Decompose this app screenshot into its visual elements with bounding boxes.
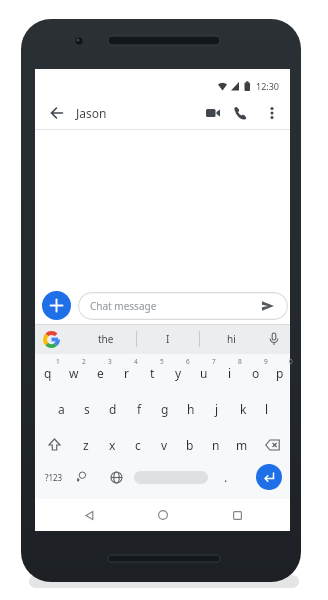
button[interactable]: e (87, 354, 113, 391)
button[interactable]: j (204, 391, 230, 427)
button[interactable] (265, 106, 279, 120)
staticText: o (252, 365, 260, 381)
staticText: . (224, 469, 228, 485)
staticText: i (228, 365, 232, 381)
button[interactable]: b (177, 427, 203, 462)
staticText: 7 (212, 357, 216, 366)
staticText: 1 (56, 357, 60, 366)
button[interactable]: g (152, 391, 178, 427)
button[interactable]: c (125, 427, 151, 462)
staticText: ?123 (45, 472, 63, 483)
button[interactable] (231, 104, 249, 122)
staticText: Chat message (90, 299, 157, 313)
staticText: y (175, 365, 182, 381)
staticText: Jason (76, 105, 107, 121)
staticText: g (161, 401, 169, 417)
staticText: n (212, 437, 220, 453)
button[interactable]: m (229, 427, 255, 462)
button[interactable] (134, 471, 208, 484)
button[interactable] (267, 332, 281, 346)
button[interactable]: h (178, 391, 204, 427)
button[interactable] (129, 462, 213, 492)
button[interactable]: Chat message (78, 292, 288, 320)
staticText: 0 (289, 357, 290, 366)
button[interactable]: o (243, 354, 269, 391)
staticText: I (166, 332, 170, 346)
staticText: r (124, 365, 129, 381)
button[interactable]: hi (200, 324, 262, 354)
staticText: p (276, 365, 284, 381)
button[interactable] (42, 291, 71, 320)
button[interactable] (255, 427, 290, 462)
button[interactable] (71, 502, 107, 528)
staticText: z (83, 437, 89, 453)
button[interactable] (260, 298, 276, 314)
staticText: 6 (186, 357, 190, 366)
button[interactable]: I (137, 324, 199, 354)
button[interactable] (35, 427, 73, 462)
button[interactable] (68, 462, 94, 492)
button[interactable] (256, 464, 282, 490)
staticText: 3 (108, 357, 112, 366)
staticText: m (236, 437, 248, 453)
button[interactable]: l (256, 391, 277, 427)
button[interactable] (103, 462, 129, 492)
button[interactable] (49, 105, 65, 121)
button[interactable] (204, 104, 222, 122)
staticText: c (135, 437, 141, 453)
staticText: f (137, 401, 142, 417)
staticText: x (109, 437, 116, 453)
staticText: d (109, 401, 117, 417)
staticText: e (97, 365, 104, 381)
button[interactable]: t (139, 354, 165, 391)
button[interactable]: the (75, 324, 136, 354)
button[interactable]: ?123 (35, 462, 73, 492)
button[interactable]: r (113, 354, 139, 391)
button[interactable]: u (191, 354, 217, 391)
button[interactable]: . (213, 462, 239, 492)
staticText: h (187, 401, 195, 417)
staticText: the (98, 332, 114, 346)
button[interactable]: s (74, 391, 100, 427)
staticText: 8 (238, 357, 242, 366)
staticText: b (186, 437, 194, 453)
button[interactable] (145, 502, 181, 528)
button[interactable]: w (61, 354, 87, 391)
button[interactable]: q (35, 354, 61, 391)
button[interactable]: v (151, 427, 177, 462)
button[interactable] (219, 502, 255, 528)
staticText: u (200, 365, 208, 381)
staticText: t (150, 365, 155, 381)
button[interactable]: y (165, 354, 191, 391)
staticText: j (215, 401, 219, 417)
staticText: 2 (82, 357, 86, 366)
staticText: l (265, 401, 269, 417)
button[interactable]: a (48, 391, 74, 427)
staticText: s (84, 401, 90, 417)
button[interactable]: x (99, 427, 125, 462)
staticText: 9 (264, 357, 268, 366)
staticText: 5 (160, 357, 164, 366)
staticText: hi (227, 332, 236, 346)
staticText: v (161, 437, 168, 453)
button[interactable]: z (73, 427, 99, 462)
button[interactable]: k (230, 391, 256, 427)
button[interactable]: p (269, 354, 290, 391)
staticText: q (44, 365, 52, 381)
staticText: a (58, 401, 65, 417)
staticText: w (69, 365, 79, 381)
staticText: 4 (134, 357, 138, 366)
staticText: k (240, 401, 247, 417)
button[interactable]: n (203, 427, 229, 462)
staticText: 12:30 (256, 80, 280, 92)
button[interactable]: d (100, 391, 126, 427)
button[interactable]: f (126, 391, 152, 427)
button[interactable]: i (217, 354, 243, 391)
